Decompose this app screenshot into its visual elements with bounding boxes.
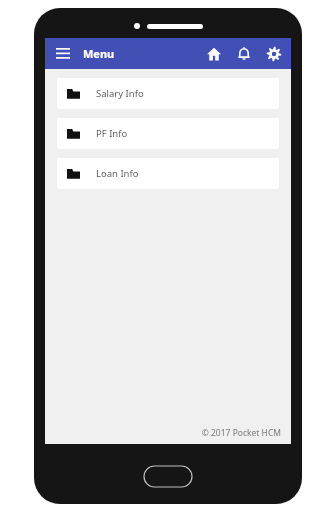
staticText: Loan Info [96,167,139,180]
button[interactable]: Loan Info [57,158,279,189]
button[interactable]: Home [202,42,226,66]
staticText: © 2017 Pocket HCM [201,427,281,439]
button[interactable]: PF Info [57,118,279,149]
button[interactable]: Open navigation menu [51,42,75,66]
button[interactable]: Settings [262,42,286,66]
staticText: PF Info [96,127,128,140]
button[interactable]: Salary Info [57,78,279,109]
staticText: Menu [83,46,115,61]
staticText: Salary Info [96,87,144,100]
button[interactable]: Home button [144,466,192,487]
button[interactable]: Notifications [232,42,256,66]
